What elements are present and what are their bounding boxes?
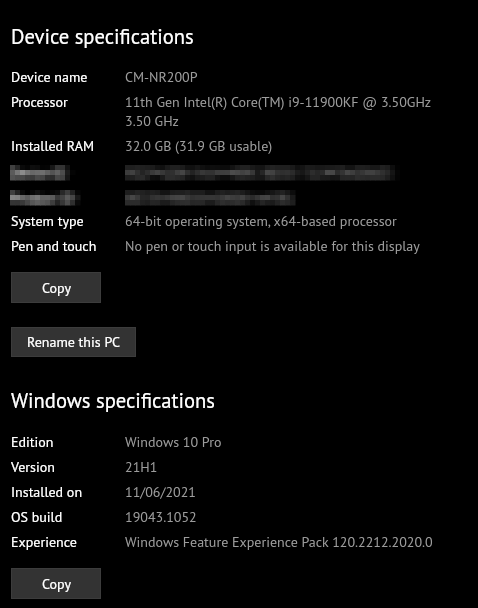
staticText: Windows 10 Pro xyxy=(125,433,222,451)
staticText: Copy xyxy=(42,575,71,593)
staticText: CM-NR200P xyxy=(125,68,198,86)
staticText: 32.0 GB (31.9 GB usable) xyxy=(125,137,273,155)
staticText: Installed on xyxy=(11,483,83,501)
staticText: 21H1 xyxy=(125,458,158,476)
staticText: Copy xyxy=(42,279,71,297)
staticText: OS build xyxy=(11,508,63,526)
staticText: No pen or touch input is available for t… xyxy=(125,237,420,255)
staticText: 11th Gen Intel(R) Core(TM) i9-11900KF @ … xyxy=(125,93,432,111)
staticText: Edition xyxy=(11,433,54,451)
staticText: Processor xyxy=(11,93,68,111)
staticText: 64-bit operating system, x64-based proce… xyxy=(125,212,397,230)
staticText: 19043.1052 xyxy=(125,508,197,526)
staticText: Windows specifications xyxy=(11,387,215,414)
button[interactable]: Copy xyxy=(11,272,101,303)
staticText: Device name xyxy=(11,68,88,86)
staticText: Device specifications xyxy=(11,23,194,50)
staticText: System type xyxy=(11,212,84,230)
staticText: 11/06/2021 xyxy=(125,483,196,501)
button[interactable]: Rename this PC xyxy=(11,327,136,357)
button[interactable]: Copy xyxy=(11,568,101,599)
staticText: Version xyxy=(11,458,55,476)
staticText: 3.50 GHz xyxy=(125,112,179,130)
staticText: Windows Feature Experience Pack 120.2212… xyxy=(125,533,433,551)
staticText: Rename this PC xyxy=(27,333,120,351)
staticText: Pen and touch xyxy=(11,237,97,255)
staticText: Experience xyxy=(11,533,77,551)
staticText: Installed RAM xyxy=(11,137,95,155)
